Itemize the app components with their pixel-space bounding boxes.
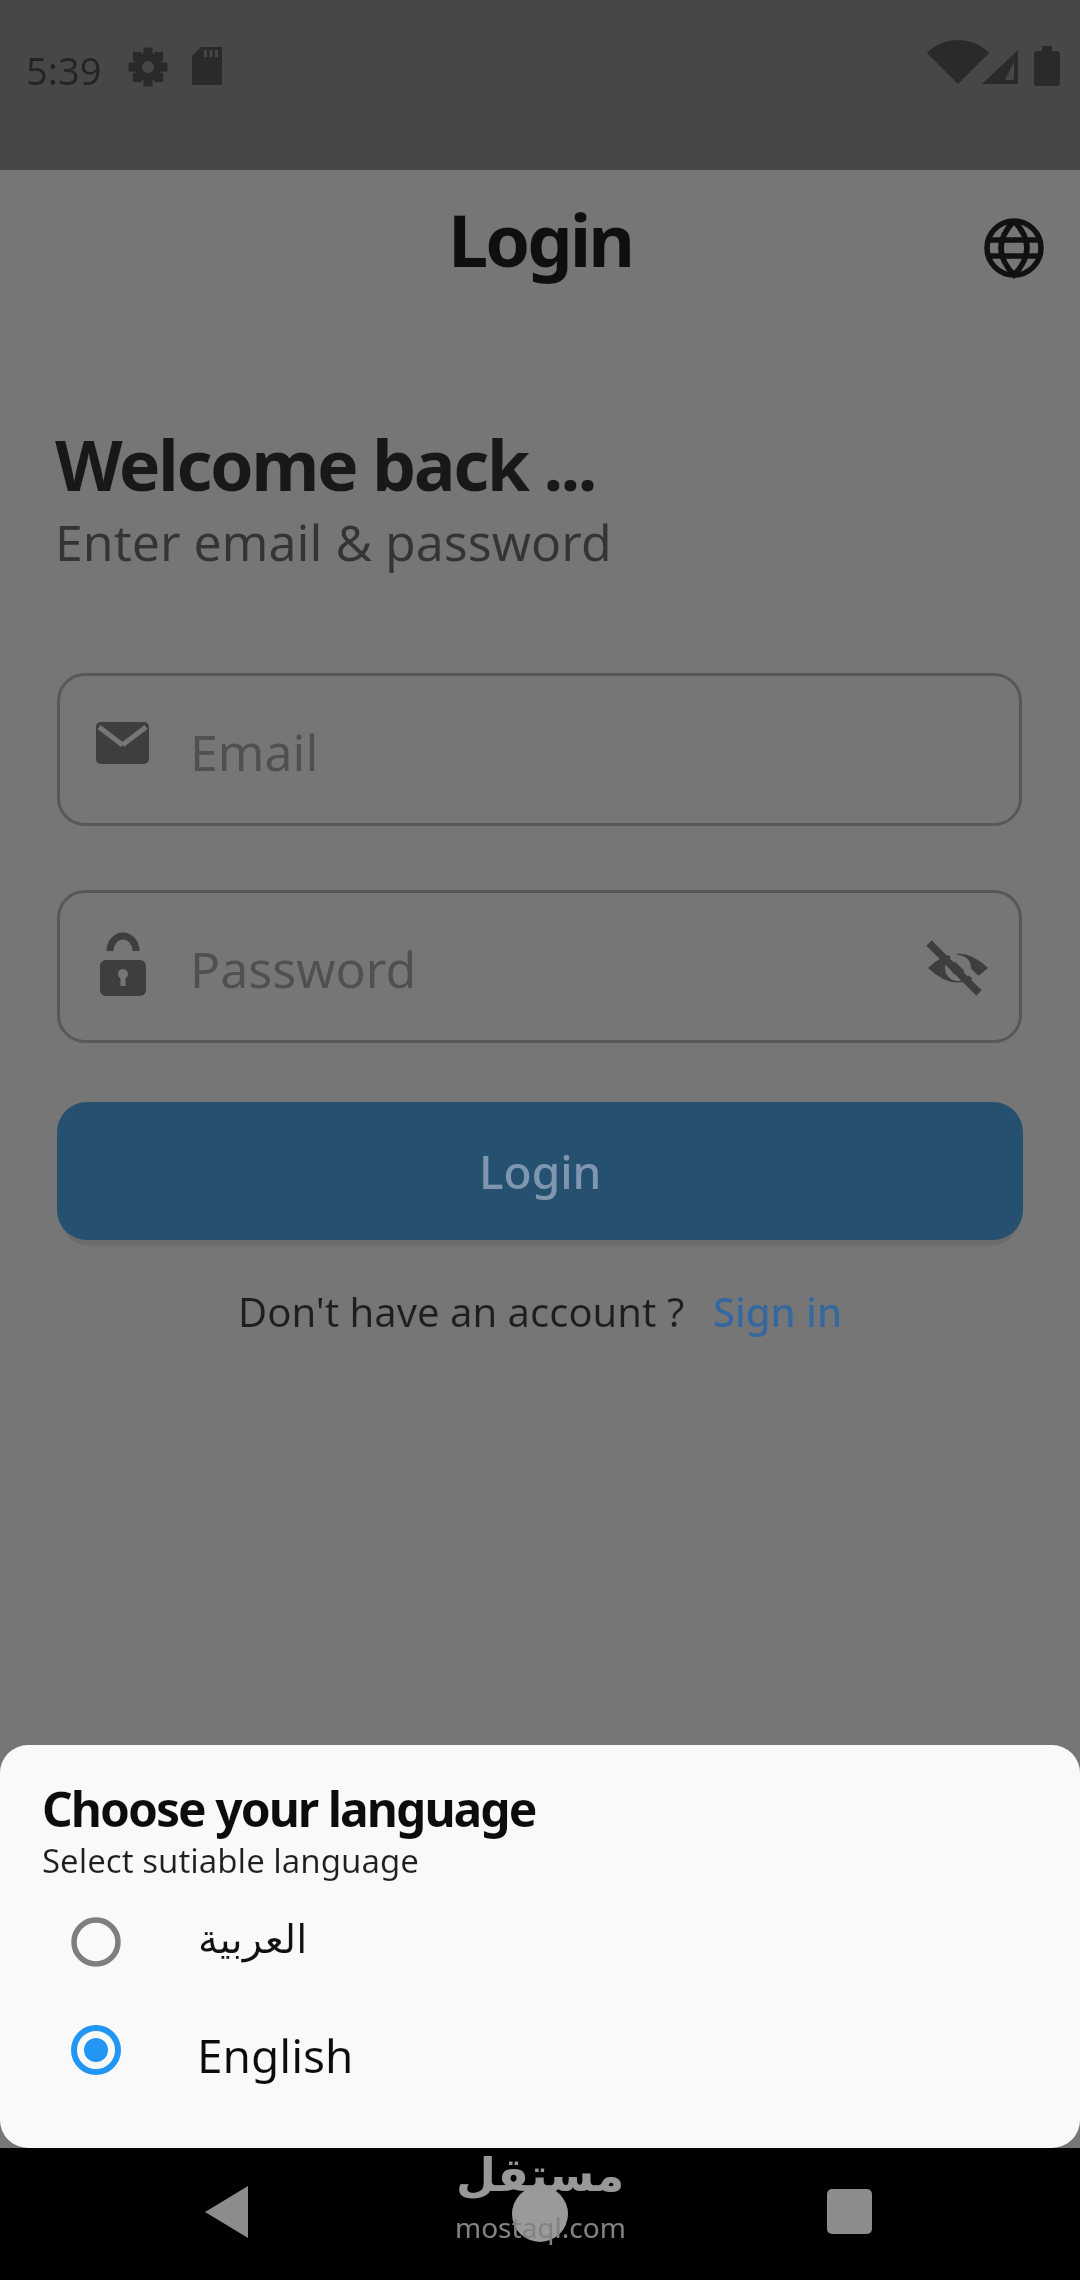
staticText: Welcome back ... — [55, 416, 595, 511]
button[interactable]: Sign in — [713, 1284, 842, 1338]
staticText: Choose your language — [42, 1776, 536, 1841]
staticText: Sign in — [713, 1284, 842, 1338]
staticText: Don't have an account ? — [238, 1284, 685, 1338]
staticText: 5:39 — [26, 44, 102, 96]
button[interactable] — [190, 2180, 260, 2250]
staticText: Select sutiable language — [42, 1838, 419, 1883]
staticText: Login — [479, 1140, 602, 1203]
staticText: Enter email & password — [55, 508, 612, 576]
staticText: Login — [448, 190, 633, 288]
button[interactable] — [57, 673, 1022, 826]
button[interactable] — [986, 220, 1042, 276]
staticText: مستقل — [456, 2148, 625, 2202]
button[interactable] — [928, 936, 994, 1002]
button[interactable] — [505, 2180, 575, 2250]
button[interactable] — [57, 890, 1022, 1043]
button[interactable] — [815, 2180, 885, 2250]
button[interactable] — [60, 2015, 340, 2087]
button[interactable]: Login — [57, 1102, 1023, 1240]
staticText: العربية — [198, 1916, 308, 1963]
staticText: mostaql.com — [455, 2208, 626, 2246]
staticText: English — [197, 2024, 354, 2087]
staticText: Password — [190, 935, 417, 1003]
button[interactable] — [60, 1906, 340, 1978]
staticText: Email — [190, 718, 319, 786]
